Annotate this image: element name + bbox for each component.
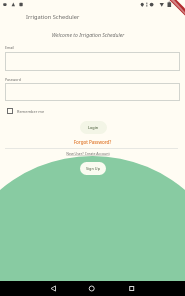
staticText: Password bbox=[5, 77, 21, 82]
button[interactable] bbox=[5, 52, 180, 71]
staticText: New User? Create Account bbox=[0, 151, 176, 156]
staticText: Forgot Password? bbox=[0, 139, 185, 145]
button[interactable]: Home bbox=[70, 281, 110, 296]
staticText: Login bbox=[88, 125, 99, 130]
button[interactable]: Forgot Password? bbox=[0, 139, 185, 145]
button[interactable]: Back bbox=[0, 281, 70, 296]
button[interactable]: Recent apps bbox=[110, 281, 185, 296]
staticText: Irrigation Scheduler bbox=[26, 13, 80, 21]
staticText: Sign Up bbox=[86, 166, 100, 171]
button[interactable] bbox=[5, 83, 180, 101]
button[interactable]: Login bbox=[80, 121, 107, 134]
button[interactable]: New User? Create Account bbox=[0, 151, 176, 156]
button[interactable]: Sign Up bbox=[80, 162, 106, 175]
staticText: Remember me bbox=[17, 109, 45, 114]
button[interactable]: Remember me bbox=[7, 108, 45, 114]
staticText: Welcome to Irrigation Scheduler bbox=[0, 32, 176, 39]
staticText: Email bbox=[5, 45, 14, 50]
